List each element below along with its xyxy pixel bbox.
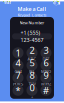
button[interactable]: 6: [40, 60, 51, 71]
staticText: *: [15, 84, 20, 96]
button[interactable]: 5: [26, 60, 37, 71]
staticText: #: [43, 84, 49, 96]
staticText: 4: [15, 56, 20, 69]
staticText: Make a Call: [17, 5, 46, 13]
button[interactable]: 7: [12, 72, 23, 83]
staticText: 6: [43, 56, 48, 69]
button[interactable]: 0: [26, 85, 37, 96]
staticText: 7: [15, 69, 20, 81]
staticText: GHI: [14, 69, 21, 74]
staticText: ıll ⃝ ▮: [53, 0, 60, 5]
staticText: +: [31, 94, 33, 99]
button[interactable]: 3: [40, 47, 51, 58]
staticText: JKL: [29, 69, 35, 74]
staticText: ABC: [27, 56, 36, 62]
staticText: 9: [43, 69, 48, 81]
button[interactable]: 9: [40, 72, 51, 83]
staticText: 2: [29, 44, 34, 56]
button[interactable]: 1: [12, 47, 23, 58]
staticText: 1: [15, 47, 20, 59]
staticText: 3: [43, 44, 48, 56]
button[interactable]: #: [40, 85, 51, 96]
staticText: +1 (555) 123-4567: [20, 29, 43, 43]
button[interactable]: 8: [26, 72, 37, 83]
staticText: 8: [29, 69, 34, 81]
staticText: Contacts: [31, 12, 46, 18]
staticText: 5: [29, 56, 34, 69]
staticText: PQRS: [13, 81, 23, 87]
staticText: TUV: [28, 81, 35, 87]
staticText: 9:41: [4, 0, 11, 5]
staticText: New Number: [19, 20, 44, 25]
button[interactable]: *: [12, 85, 23, 96]
staticText: MNO: [41, 69, 51, 74]
staticText: DEF: [42, 56, 49, 62]
staticText: Keypad: [17, 12, 29, 18]
staticText: 0: [29, 81, 34, 94]
button[interactable]: 2: [26, 47, 37, 58]
button[interactable]: 4: [12, 60, 23, 71]
staticText: WXYZ: [41, 81, 51, 87]
